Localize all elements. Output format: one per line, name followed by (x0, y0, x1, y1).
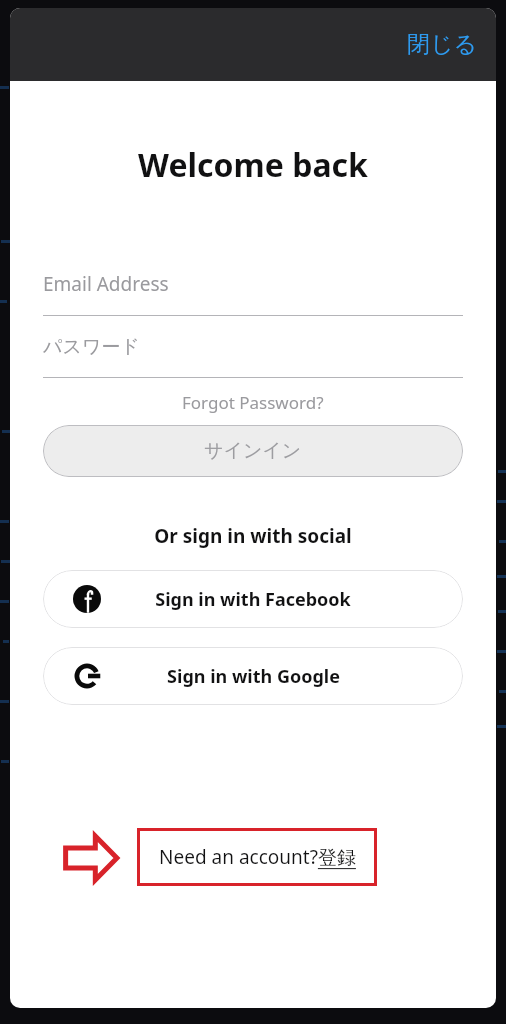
button[interactable]: Forgot Password? (176, 389, 330, 416)
staticText: パスワード (43, 335, 140, 359)
button[interactable]: パスワード (43, 316, 463, 377)
staticText: サインイン (204, 439, 302, 463)
other: Annotation arrow (64, 833, 118, 883)
button[interactable]: Email Address (43, 253, 463, 315)
staticText: Or sign in with social (43, 523, 463, 549)
staticText: Forgot Password? (182, 391, 324, 414)
button[interactable]: Sign in with Facebook (43, 570, 463, 628)
button[interactable]: Need an account?登録 (137, 828, 377, 886)
staticText: 閉じる (407, 30, 478, 59)
staticText: Need an account?登録 (159, 844, 356, 870)
staticText: Email Address (43, 271, 169, 297)
button[interactable]: サインイン (43, 425, 463, 477)
button[interactable]: Sign in with Google (43, 647, 463, 705)
staticText: Sign in with Google (167, 664, 340, 689)
staticText: Sign in with Facebook (155, 587, 351, 612)
staticText: Welcome back (43, 143, 463, 187)
button[interactable]: 閉じる (397, 24, 488, 65)
